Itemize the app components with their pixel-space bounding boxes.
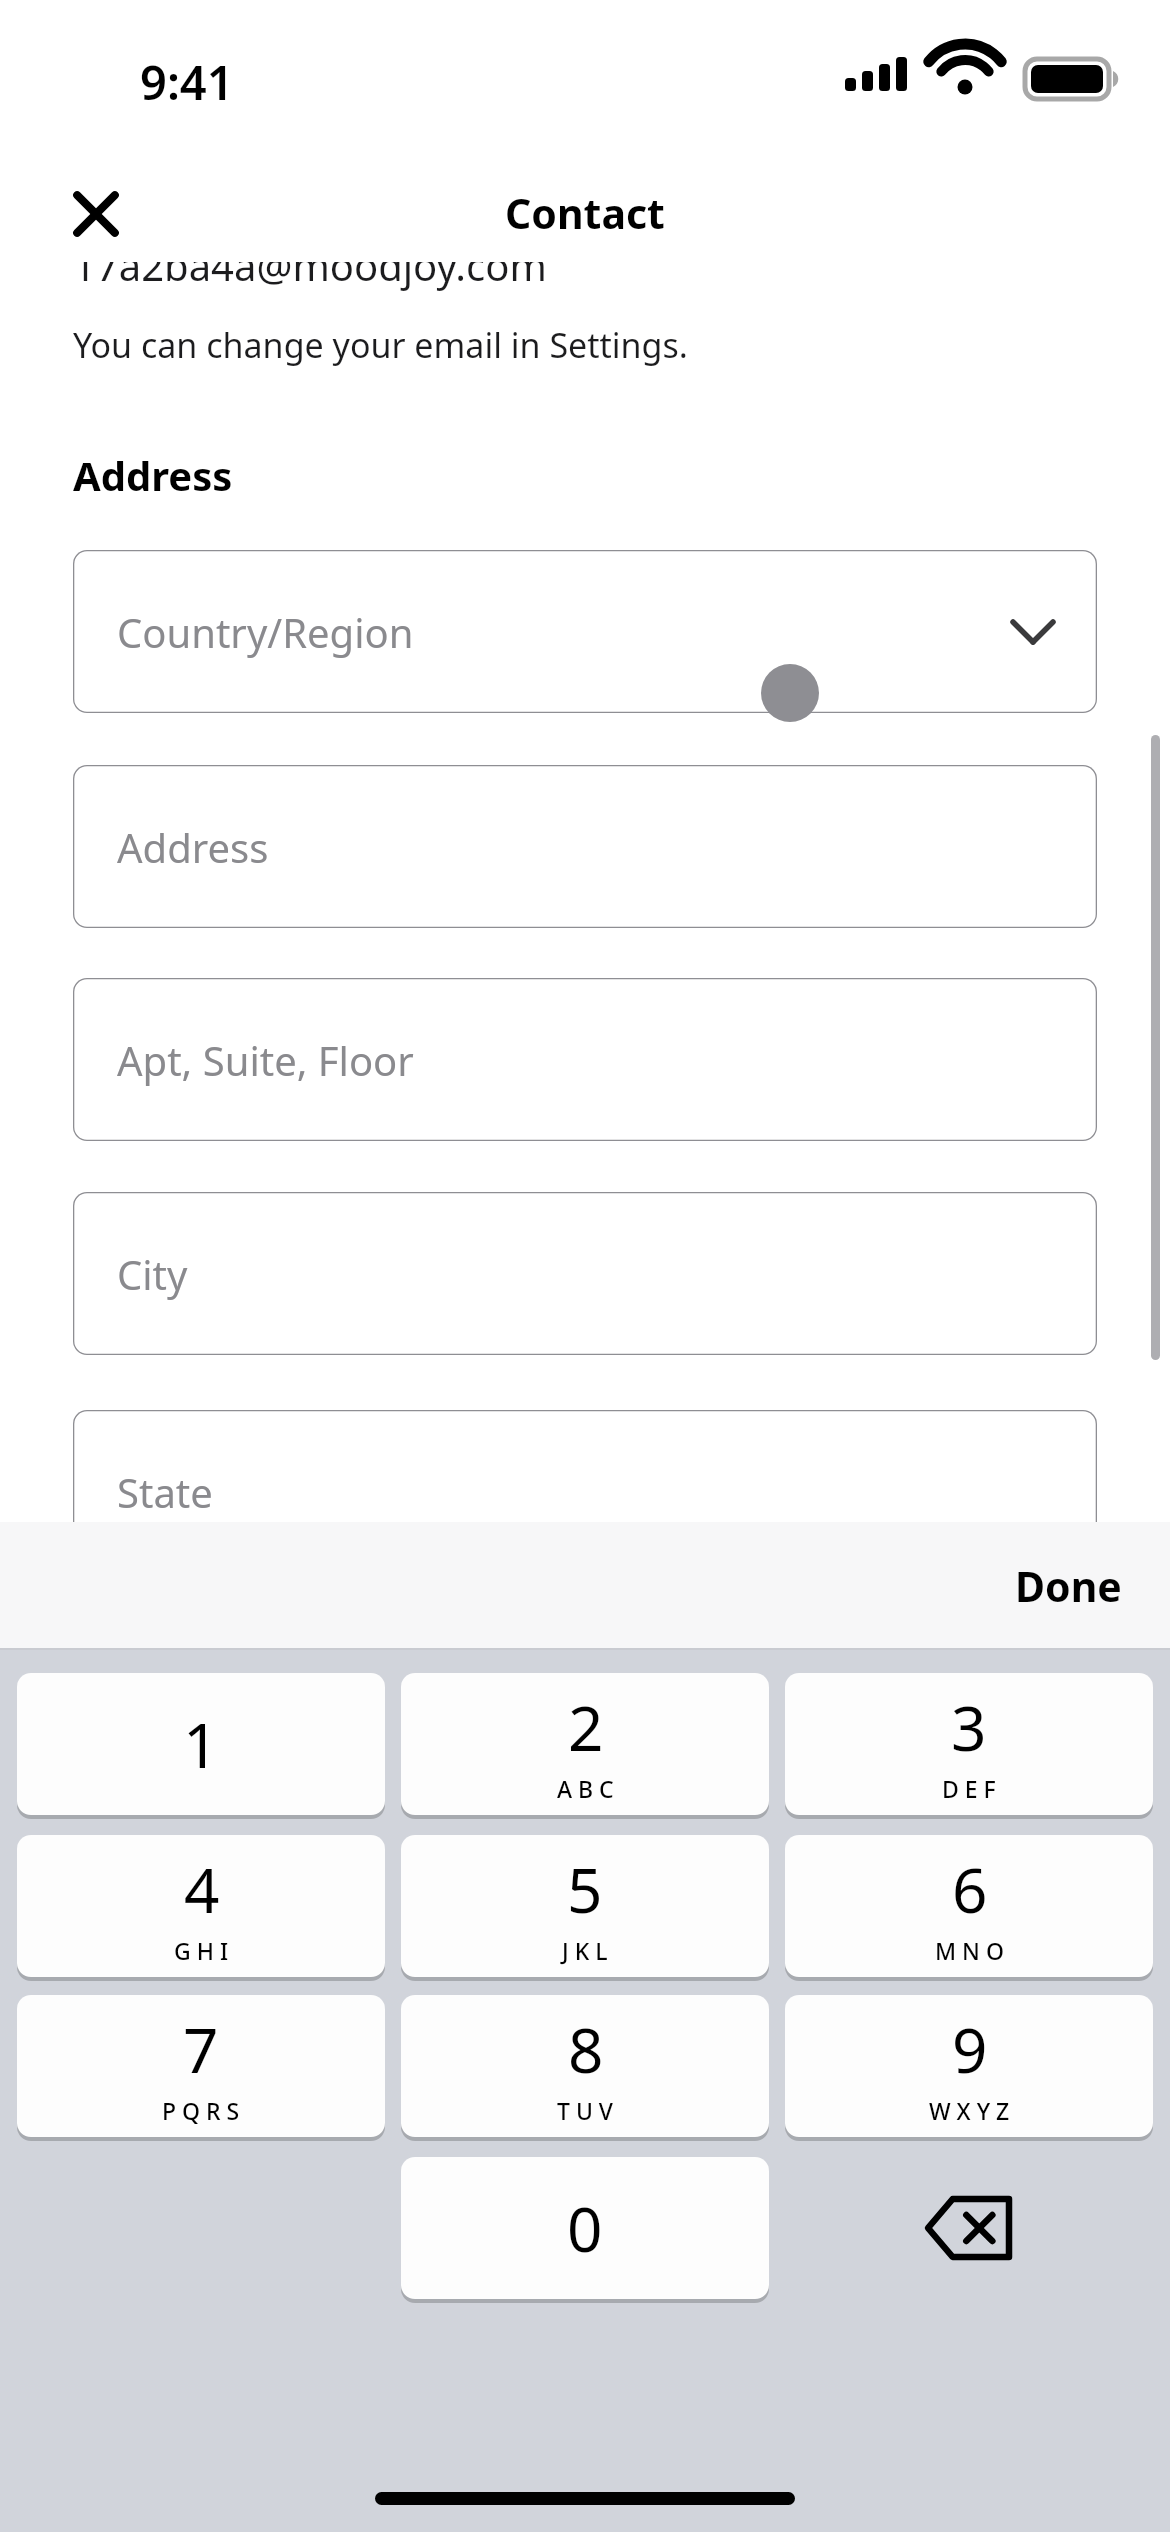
staticText: 1 xyxy=(183,1702,219,1786)
staticText: 9:41 xyxy=(140,50,234,114)
staticText: You can change your email in Settings. xyxy=(73,322,688,368)
button[interactable]: 7 xyxy=(17,1995,385,2141)
button[interactable]: Country/Region xyxy=(73,550,1097,713)
button[interactable]: 9 xyxy=(785,1995,1153,2141)
staticText: 6 xyxy=(952,1847,988,1931)
staticText: Apt, Suite, Floor xyxy=(117,1033,414,1087)
staticText: 3 xyxy=(951,1685,987,1769)
button[interactable]: 4 xyxy=(17,1835,385,1981)
staticText: P Q R S xyxy=(162,2095,240,2126)
staticText: Done xyxy=(1015,1558,1122,1614)
button[interactable]: 3 xyxy=(785,1673,1153,1819)
button[interactable]: City xyxy=(73,1192,1097,1355)
staticText: 9:41 xyxy=(140,50,234,114)
staticText: 5 xyxy=(567,1847,603,1931)
button[interactable]: Address xyxy=(73,765,1097,928)
button[interactable]: 8 xyxy=(401,1995,769,2141)
staticText: Address xyxy=(117,820,269,874)
button[interactable]: Apt, Suite, Floor xyxy=(73,978,1097,1141)
button[interactable]: 0 xyxy=(401,2157,769,2303)
staticText: Contact xyxy=(505,185,665,241)
staticText: 2 xyxy=(568,1685,604,1769)
button[interactable]: 6 xyxy=(785,1835,1153,1981)
staticText: State xyxy=(117,1465,213,1519)
button[interactable]: Done xyxy=(997,1544,1140,1628)
staticText: Address xyxy=(73,448,233,502)
staticText: T U V xyxy=(557,2095,614,2126)
staticText: D E F xyxy=(942,1773,996,1804)
staticText: G H I xyxy=(174,1935,229,1966)
staticText: 0 xyxy=(567,2186,603,2270)
staticText: 4 xyxy=(184,1847,220,1931)
staticText: W X Y Z xyxy=(929,2095,1010,2126)
staticText: 8 xyxy=(568,2007,604,2091)
button[interactable]: 5 xyxy=(401,1835,769,1981)
button[interactable]: State xyxy=(73,1410,1097,1573)
button[interactable]: 1 xyxy=(17,1673,385,1819)
staticText: M N O xyxy=(935,1935,1004,1966)
staticText: 17a2ba4a@moodjoy.com xyxy=(73,238,547,292)
button[interactable]: Delete xyxy=(785,2157,1153,2299)
staticText: Country/Region xyxy=(117,605,414,659)
staticText: City xyxy=(117,1247,188,1301)
button[interactable]: Close xyxy=(52,170,140,258)
staticText: A B C xyxy=(557,1773,614,1804)
staticText: J K L xyxy=(562,1935,608,1966)
button[interactable]: 2 xyxy=(401,1673,769,1819)
staticText: 9 xyxy=(952,2007,988,2091)
button[interactable]: Close xyxy=(52,170,140,258)
staticText: 7 xyxy=(183,2007,219,2091)
staticText: Contact xyxy=(505,185,665,241)
